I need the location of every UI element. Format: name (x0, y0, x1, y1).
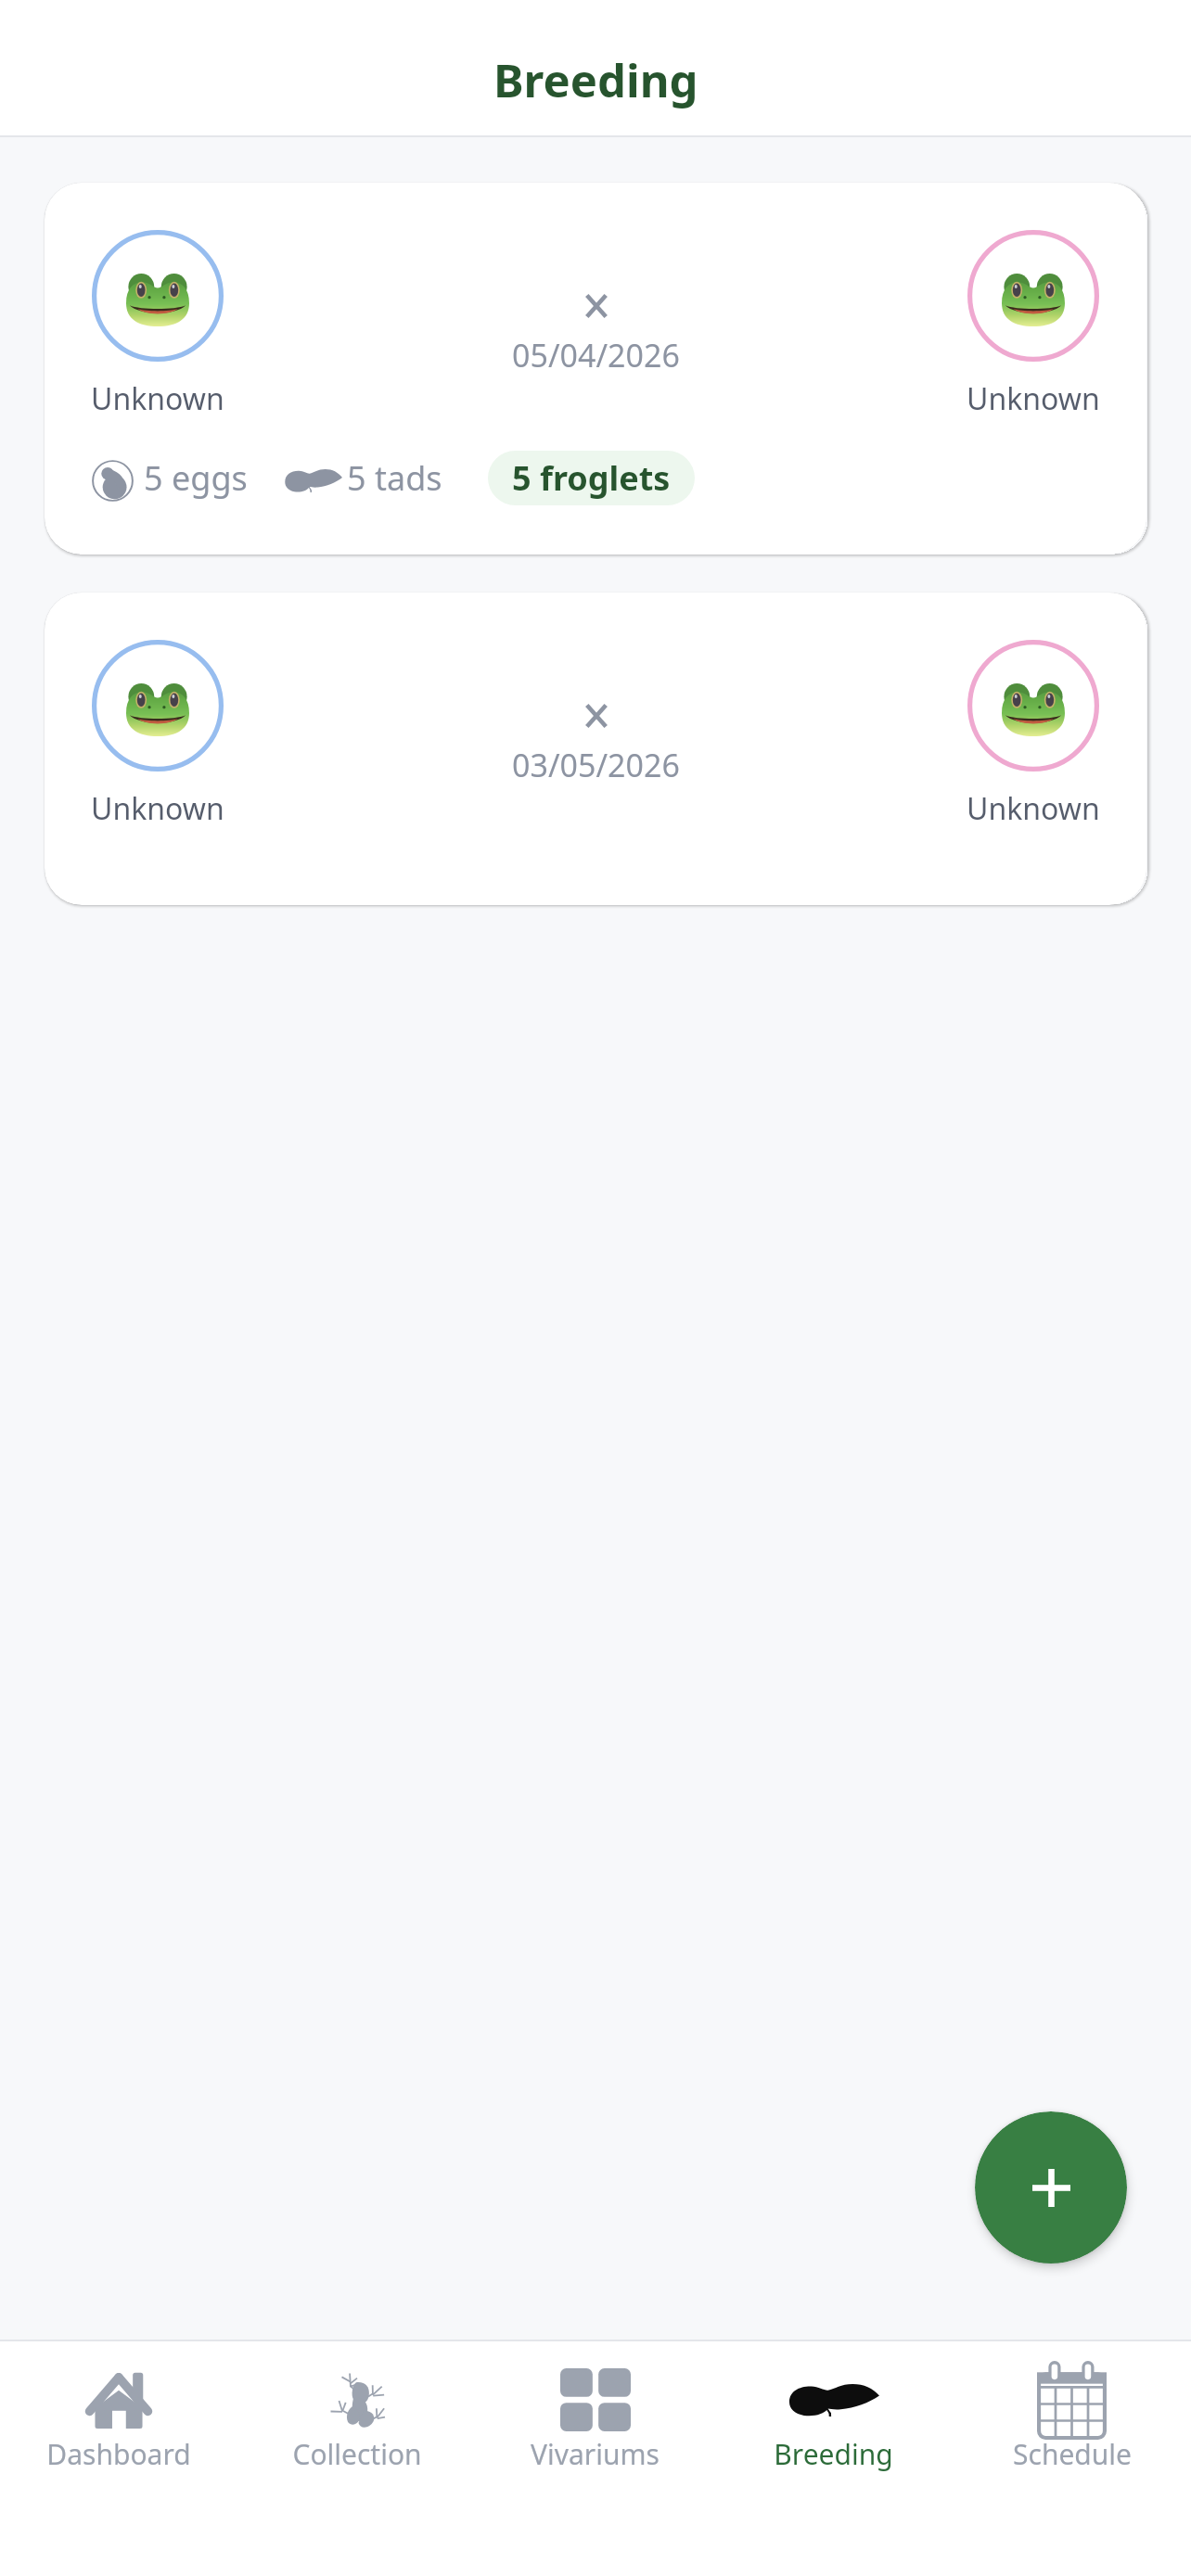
staticText: Unknown (91, 378, 224, 419)
button[interactable]: Male frog (45, 593, 1146, 905)
staticText: 5 froglets (512, 455, 671, 501)
staticText: 03/05/2026 (512, 744, 680, 786)
button[interactable]: Male frog (45, 183, 1146, 555)
button[interactable]: Collection (237, 2341, 476, 2576)
staticText: Schedule (1013, 2435, 1132, 2473)
staticText: Unknown (967, 788, 1100, 829)
staticText: Collection (292, 2435, 422, 2473)
button[interactable]: Schedule (953, 2341, 1191, 2576)
staticText: Dashboard (46, 2435, 191, 2473)
button[interactable]: Female frog (967, 230, 1099, 362)
staticText: Vivariums (531, 2435, 660, 2473)
button[interactable]: Add breeding pair (975, 2111, 1127, 2264)
button[interactable]: Dashboard (0, 2341, 237, 2576)
button[interactable]: Breeding (714, 2341, 953, 2576)
staticText: Breeding (493, 49, 698, 111)
button[interactable]: Male frog (92, 640, 224, 772)
button[interactable]: Female frog (967, 640, 1099, 772)
staticText: Unknown (967, 378, 1100, 419)
staticText: 5 tads (347, 455, 442, 501)
staticText: 05/04/2026 (512, 334, 680, 376)
staticText: 5 eggs (144, 455, 248, 501)
button[interactable]: Male frog (92, 230, 224, 362)
button[interactable]: Vivariums (476, 2341, 714, 2576)
staticText: Breeding (774, 2435, 893, 2473)
staticText: Unknown (91, 788, 224, 829)
